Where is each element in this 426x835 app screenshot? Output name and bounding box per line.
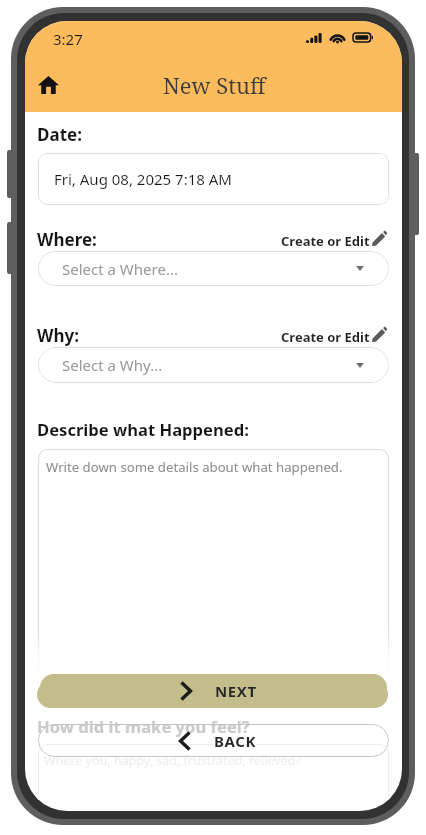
staticText: Select a Why... <box>62 355 163 375</box>
button[interactable]: Fri, Aug 08, 2025 7:18 AM <box>38 153 389 205</box>
staticText: Describe what Happened: <box>37 418 249 441</box>
button[interactable]: Home <box>31 68 65 102</box>
button[interactable]: BACK <box>38 724 389 757</box>
staticText: 3:27 <box>53 29 83 49</box>
staticText: BACK <box>214 731 257 751</box>
button[interactable]: NEXT <box>38 674 389 708</box>
button[interactable]: Select a Where... <box>38 251 389 286</box>
staticText: Create or Edit <box>281 328 370 346</box>
staticText: Date: <box>37 123 82 146</box>
button[interactable]: Create or Edit <box>281 232 387 250</box>
button[interactable]: Create or Edit <box>281 328 387 346</box>
button[interactable] <box>37 681 388 708</box>
staticText: Select a Where... <box>62 259 178 279</box>
staticText: Create or Edit <box>281 232 370 250</box>
staticText: New Stuff <box>163 70 266 100</box>
staticText: How did it make you feel? <box>37 715 250 738</box>
staticText: Write down some details about what happe… <box>46 458 343 476</box>
button[interactable]: Select a Why... <box>38 347 389 383</box>
button[interactable]: Write down some details about what happe… <box>38 449 389 679</box>
staticText: Where: <box>37 228 97 251</box>
staticText: Why: <box>37 324 79 347</box>
staticText: Fri, Aug 08, 2025 7:18 AM <box>54 169 232 189</box>
staticText: NEXT <box>215 681 257 701</box>
staticText: Where you, happy, sad, frustrated, relie… <box>44 752 301 769</box>
